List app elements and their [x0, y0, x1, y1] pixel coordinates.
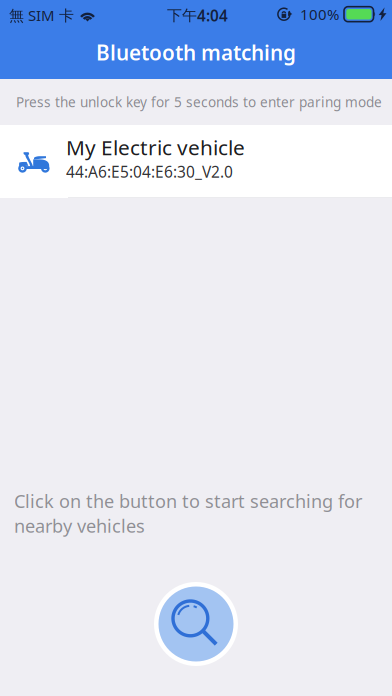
- staticText: 無 SIM 卡: [9, 5, 74, 25]
- button[interactable]: My Electric vehicle: [0, 125, 392, 198]
- staticText: 44:A6:E5:04:E6:30_V2.0: [66, 161, 233, 182]
- staticText: 4:04: [197, 5, 228, 26]
- staticText: Bluetooth matching: [96, 38, 296, 66]
- staticText: 下午: [167, 6, 197, 25]
- staticText: My Electric vehicle: [66, 133, 245, 161]
- button[interactable]: Search for nearby vehicles: [154, 582, 238, 666]
- staticText: 100%: [300, 4, 339, 24]
- staticText: Press the unlock key for 5 seconds to en…: [16, 93, 382, 111]
- staticText: Click on the button to start searching f…: [14, 489, 362, 538]
